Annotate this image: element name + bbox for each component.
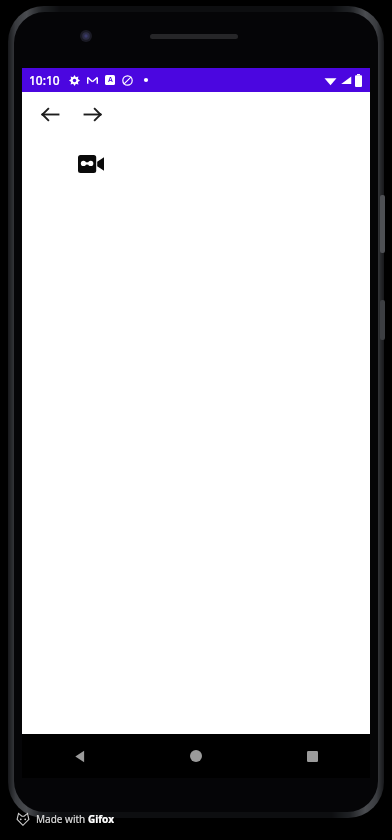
staticText: 10:10 (29, 72, 60, 88)
button[interactable]: Home (138, 734, 254, 778)
button[interactable]: Forward (72, 94, 112, 134)
staticText: Made with (36, 812, 88, 826)
button[interactable]: Recent apps (254, 734, 370, 778)
button[interactable]: Back (22, 734, 138, 778)
staticText: A (108, 75, 113, 85)
button[interactable]: Video placeholder (78, 155, 104, 173)
staticText: Gifox (88, 812, 114, 826)
button[interactable]: Back (30, 94, 70, 134)
